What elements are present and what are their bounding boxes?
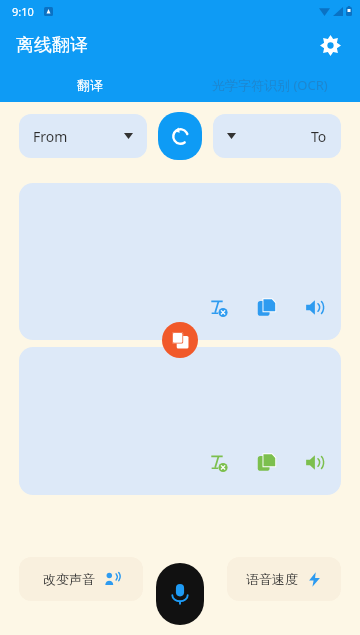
button[interactable]: To	[213, 114, 341, 158]
staticText: From	[33, 127, 68, 146]
staticText: To	[311, 127, 327, 146]
button[interactable]: 翻译	[0, 68, 180, 102]
button[interactable]: Microphone	[156, 563, 204, 625]
staticText: 光学字符识别 (OCR)	[212, 76, 328, 94]
button[interactable]: Clear text	[205, 449, 231, 475]
button[interactable]: 光学字符识别 (OCR)	[180, 68, 360, 102]
button[interactable]: Clear text	[19, 347, 341, 495]
button[interactable]: Translate	[162, 322, 198, 358]
staticText: 改变声音	[43, 571, 95, 587]
button[interactable]: Clear text	[19, 183, 341, 340]
button[interactable]: 语音速度	[227, 557, 341, 601]
button[interactable]: Swap languages	[158, 112, 202, 160]
button[interactable]: Settings	[314, 29, 346, 61]
button[interactable]: Speak	[301, 449, 327, 475]
staticText: 语音速度	[246, 571, 298, 587]
button[interactable]: Speak	[301, 294, 327, 320]
staticText: 离线翻译	[16, 34, 88, 57]
button[interactable]: Clear text	[205, 294, 231, 320]
button[interactable]: Copy	[253, 294, 279, 320]
staticText: 9:10	[12, 4, 34, 19]
button[interactable]: Copy	[253, 449, 279, 475]
button[interactable]: 改变声音	[19, 557, 143, 601]
staticText: 翻译	[77, 77, 103, 93]
button[interactable]: From	[19, 114, 147, 158]
